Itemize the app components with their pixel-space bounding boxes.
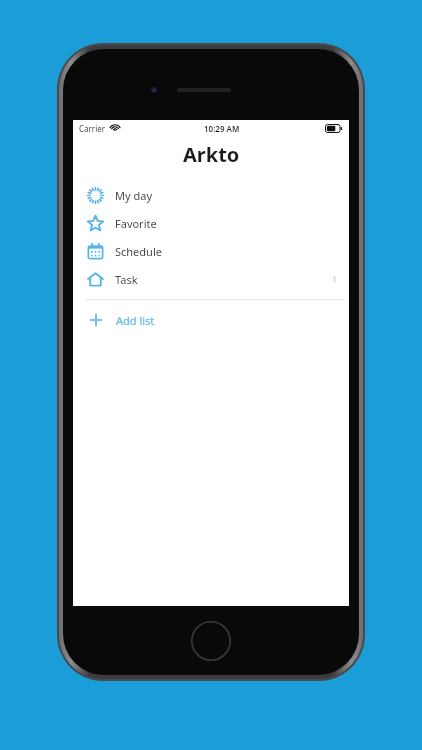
staticText: Task <box>115 272 138 287</box>
button[interactable]: My day <box>73 181 349 209</box>
staticText: Favorite <box>115 216 157 231</box>
staticText: Add list <box>116 313 155 328</box>
button[interactable]: Task <box>73 265 349 293</box>
button[interactable]: Add list <box>73 306 349 334</box>
staticText: Carrier <box>79 123 106 134</box>
staticText: Schedule <box>115 244 162 259</box>
button[interactable]: Favorite <box>73 209 349 237</box>
other: Schedule <box>87 243 104 260</box>
other: Add list <box>89 313 103 327</box>
staticText: My day <box>115 188 152 203</box>
staticText: Arkto <box>183 141 240 168</box>
other: Favorite <box>87 215 104 232</box>
button[interactable]: Schedule <box>73 237 349 265</box>
other: My day <box>87 187 104 204</box>
other: Task <box>87 271 104 288</box>
staticText: 10:29 AM <box>204 123 240 134</box>
staticText: 1 <box>332 273 338 285</box>
